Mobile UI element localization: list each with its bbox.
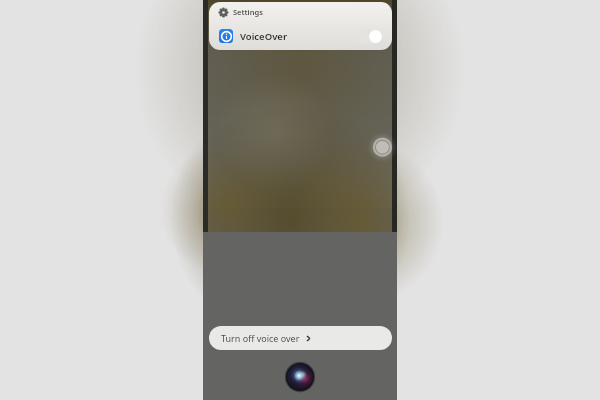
button[interactable]: VoiceOver: [209, 22, 392, 50]
other: VoiceOver: [219, 29, 233, 43]
button[interactable]: VoiceOver toggle: [357, 29, 383, 44]
staticText: Settings: [233, 7, 263, 17]
button[interactable]: Turn off voice over: [209, 326, 392, 350]
staticText: VoiceOver: [240, 30, 288, 43]
staticText: Turn off voice over: [221, 332, 300, 344]
button[interactable]: Siri: [286, 363, 314, 391]
button[interactable]: Settings: [209, 2, 392, 50]
